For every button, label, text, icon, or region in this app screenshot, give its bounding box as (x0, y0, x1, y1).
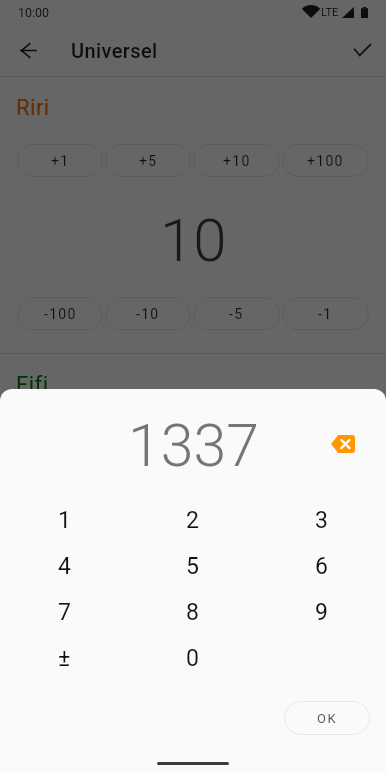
button[interactable]: 4 (0, 543, 128, 589)
staticText: -100 (44, 306, 77, 322)
staticText: ± (58, 645, 71, 672)
button[interactable]: +5 (105, 421, 191, 454)
staticText: +100 (307, 430, 344, 446)
button[interactable]: 1 (0, 497, 128, 543)
button[interactable]: 2 (128, 497, 257, 543)
button[interactable]: 7 (0, 589, 128, 635)
button[interactable]: 9 (257, 589, 386, 635)
staticText: -1 (318, 306, 333, 322)
button[interactable]: +5 (105, 144, 191, 177)
button[interactable]: 3 (257, 497, 386, 543)
button[interactable]: +100 (282, 144, 369, 177)
staticText: 7 (58, 599, 71, 626)
staticText: Riri (16, 95, 50, 121)
button[interactable]: OK (284, 701, 370, 735)
button[interactable]: +10 (193, 421, 280, 454)
button[interactable]: -1 (282, 574, 369, 607)
button[interactable]: 0 (128, 635, 257, 681)
button[interactable]: +10 (193, 144, 280, 177)
staticText: 4 (58, 553, 71, 580)
button[interactable]: ± (0, 635, 128, 681)
staticText: +5 (139, 430, 158, 446)
staticText: 1 (58, 507, 71, 534)
button[interactable]: -5 (193, 297, 280, 330)
button[interactable]: -10 (105, 297, 191, 330)
button[interactable]: -1 (282, 297, 369, 330)
staticText: +10 (223, 430, 251, 446)
staticText: -5 (229, 306, 244, 322)
button[interactable]: Backspace (323, 424, 363, 464)
button[interactable]: +1 (17, 144, 103, 177)
staticText: +100 (307, 153, 344, 169)
button[interactable]: 5 (128, 543, 257, 589)
staticText: 10 (160, 205, 227, 275)
staticText: 0 (176, 482, 210, 552)
staticText: LTE (321, 6, 339, 19)
staticText: 1337 (128, 411, 259, 473)
staticText: 5 (186, 553, 199, 580)
button[interactable]: Back (8, 30, 48, 70)
staticText: +5 (139, 153, 158, 169)
button[interactable]: -100 (17, 574, 103, 607)
staticText: 8 (186, 599, 199, 626)
staticText: -10 (136, 306, 160, 322)
staticText: 10:00 (18, 5, 50, 20)
button[interactable]: +100 (282, 421, 369, 454)
staticText: OK (317, 711, 338, 726)
staticText: 9 (315, 599, 328, 626)
button[interactable]: 8 (128, 589, 257, 635)
staticText: 2 (186, 507, 199, 534)
staticText: 3 (315, 507, 328, 534)
staticText: Universel (71, 39, 158, 62)
button[interactable]: 6 (257, 543, 386, 589)
button[interactable]: Confirm (342, 30, 382, 70)
button[interactable]: -5 (193, 574, 280, 607)
button[interactable]: -100 (17, 297, 103, 330)
staticText: 0 (186, 645, 199, 672)
staticText: Fifi (16, 372, 49, 398)
staticText: +10 (223, 153, 251, 169)
button[interactable]: -10 (105, 574, 191, 607)
staticText: +1 (51, 153, 70, 169)
staticText: 6 (315, 553, 328, 580)
